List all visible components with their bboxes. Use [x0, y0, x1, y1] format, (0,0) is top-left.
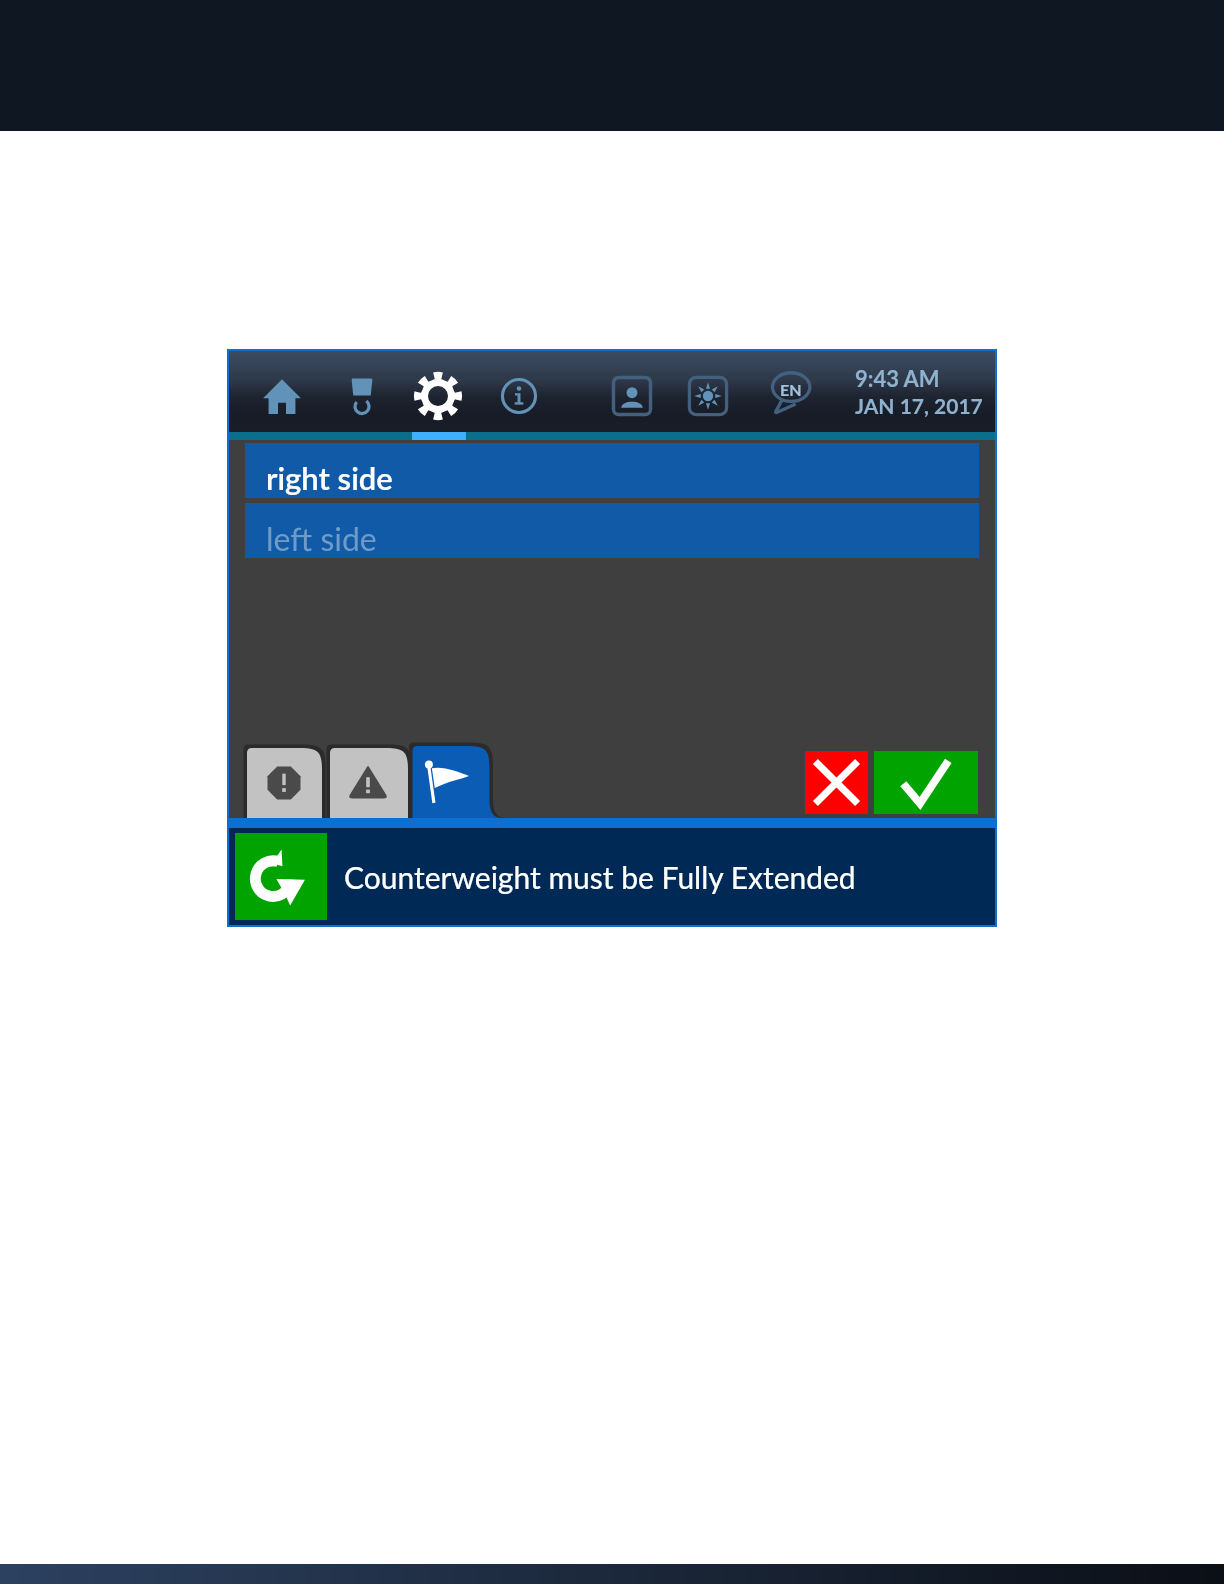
button[interactable]: Confirm [874, 751, 978, 814]
staticText: left side [266, 519, 377, 557]
staticText: right side [266, 459, 393, 496]
button[interactable]: Operator [604, 351, 660, 432]
staticText: Counterweight must be Fully Extended [344, 859, 856, 895]
button[interactable]: Rotate [235, 833, 327, 920]
staticText: EN [780, 380, 802, 399]
staticText: 9:43 AM [855, 365, 940, 391]
button[interactable]: Language [763, 351, 819, 432]
button[interactable]: Flags [413, 748, 490, 818]
button[interactable]: right side [245, 443, 979, 498]
button[interactable]: Brightness [680, 351, 736, 432]
button[interactable]: Info [491, 351, 547, 432]
button[interactable]: Settings [410, 351, 466, 432]
button[interactable]: Home [254, 351, 310, 432]
button[interactable]: Cancel [805, 751, 868, 814]
button[interactable]: Warnings [330, 748, 408, 818]
button[interactable]: left side [245, 503, 979, 558]
staticText: JAN 17, 2017 [855, 393, 983, 418]
button[interactable]: Hook [334, 351, 390, 432]
button[interactable]: Stop alerts [247, 748, 322, 818]
